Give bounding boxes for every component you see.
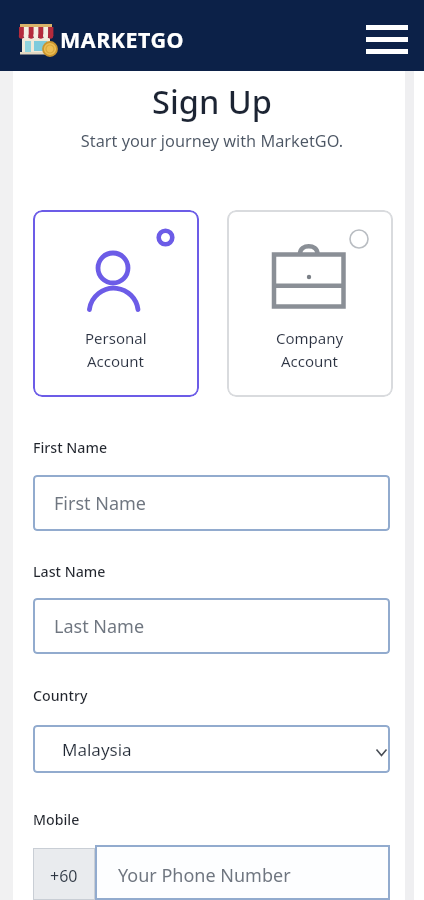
staticText: First Name xyxy=(54,491,146,516)
staticText: Account xyxy=(281,351,339,371)
staticText: +60 xyxy=(50,865,78,887)
staticText: First Name xyxy=(33,438,108,457)
button[interactable]: Personal xyxy=(33,210,199,397)
button[interactable]: Last Name xyxy=(33,598,390,654)
staticText: MARKETGO xyxy=(60,25,185,54)
staticText: Country xyxy=(33,686,88,705)
staticText: Account xyxy=(87,351,145,371)
staticText: Mobile xyxy=(33,810,80,829)
staticText: Last Name xyxy=(33,562,106,581)
button[interactable]: Malaysia xyxy=(33,725,390,773)
staticText: Sign Up xyxy=(0,79,424,123)
staticText: Malaysia xyxy=(62,738,132,761)
button[interactable] xyxy=(364,22,410,55)
button[interactable]: First Name xyxy=(33,475,390,531)
button[interactable]: Company xyxy=(227,210,393,397)
staticText: Last Name xyxy=(54,614,145,639)
staticText: Start your journey with MarketGO. xyxy=(0,130,424,152)
staticText: Company xyxy=(276,328,344,348)
staticText: Your Phone Number xyxy=(118,863,291,888)
button[interactable]: Your Phone Number xyxy=(95,845,390,900)
staticText: Personal xyxy=(85,328,147,348)
